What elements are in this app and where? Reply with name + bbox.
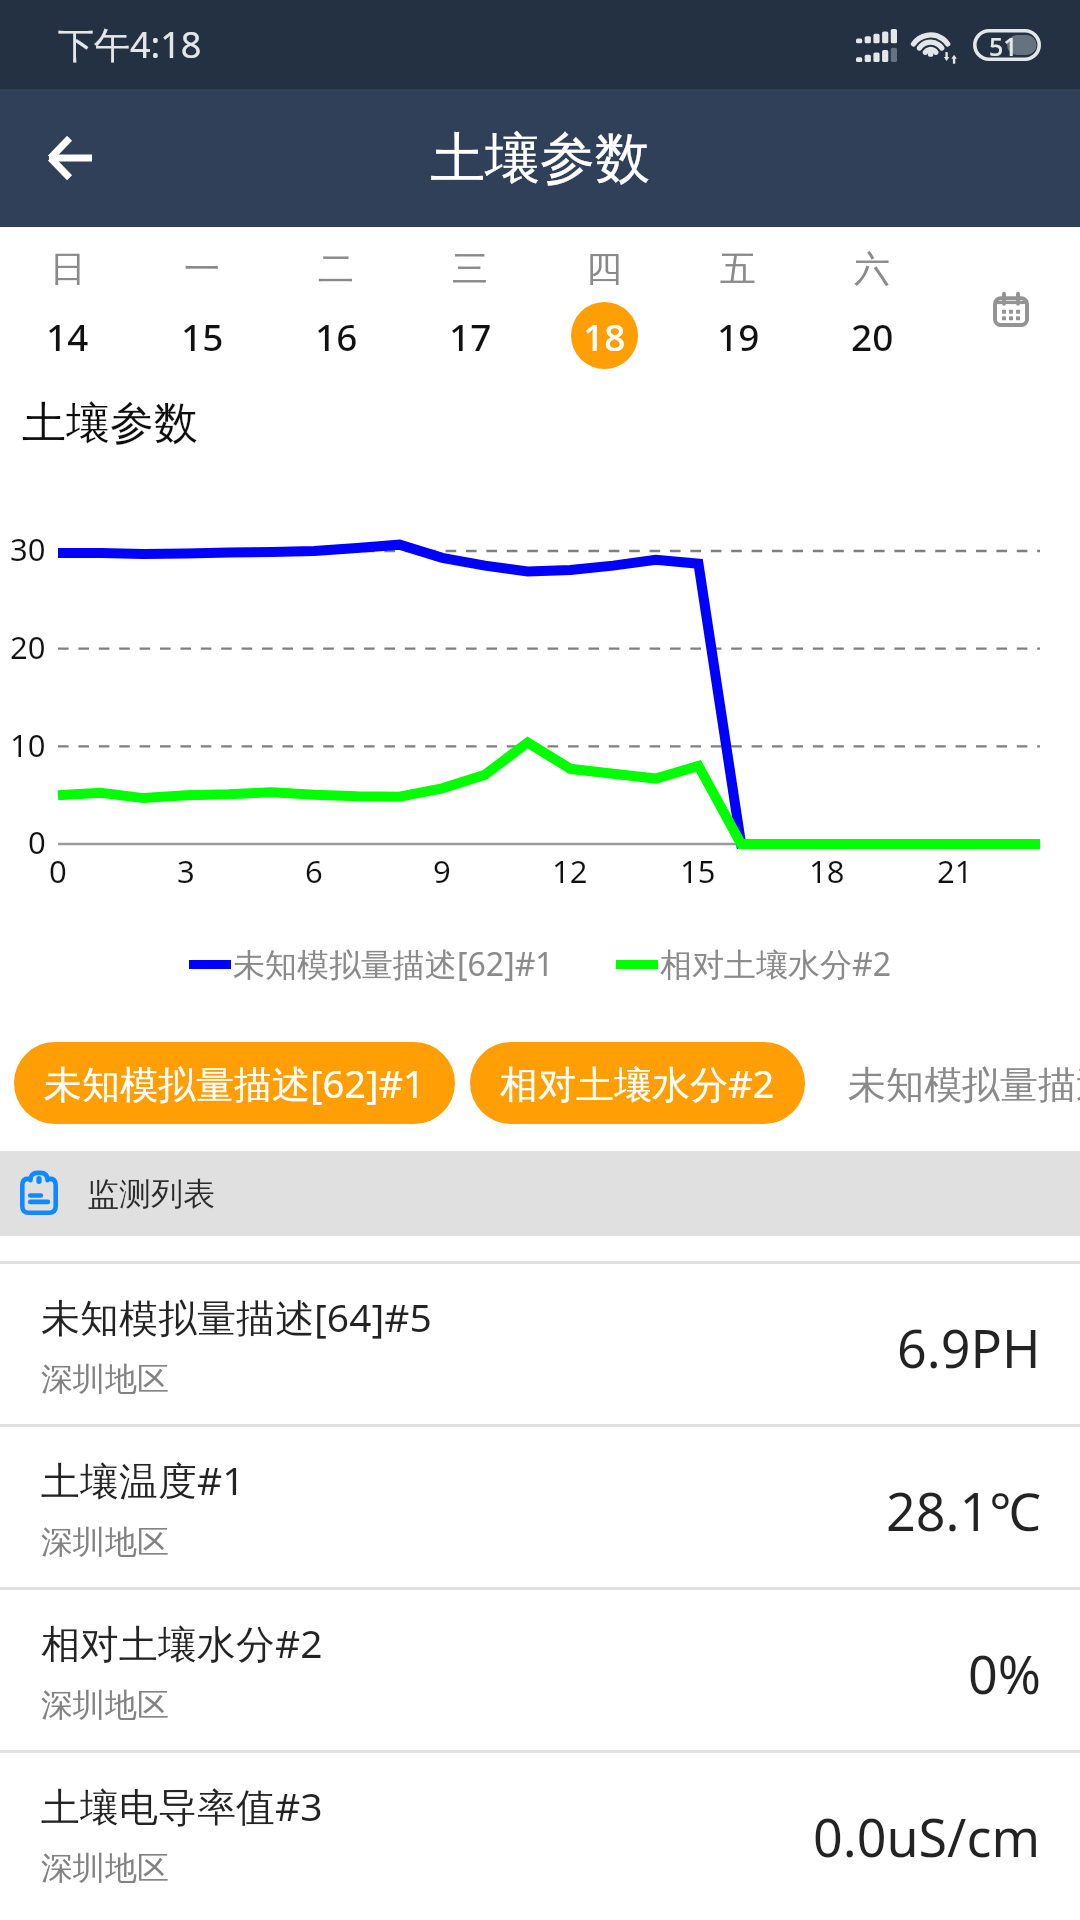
- staticText: 15: [181, 311, 224, 361]
- staticText: 20: [851, 311, 894, 361]
- staticText: 日: [50, 246, 86, 291]
- staticText: 6: [305, 850, 323, 892]
- staticText: 15: [680, 850, 716, 892]
- staticText: 相对土壤水分#2: [41, 1616, 323, 1669]
- staticText: 土壤温度#1: [41, 1453, 245, 1506]
- button[interactable]: 土壤电导率值#3: [0, 1753, 1080, 1913]
- staticText: 0: [49, 850, 67, 892]
- button[interactable]: 相对土壤水分#2: [0, 1590, 1080, 1750]
- button[interactable]: 三: [403, 227, 537, 369]
- staticText: 0: [28, 821, 46, 863]
- button[interactable]: 六: [805, 227, 939, 369]
- staticText: 51: [989, 29, 1018, 61]
- staticText: 28.1℃: [886, 1475, 1041, 1546]
- staticText: 17: [449, 311, 492, 361]
- staticText: 深圳地区: [41, 1848, 169, 1888]
- staticText: 6.9PH: [897, 1312, 1041, 1383]
- staticText: 10: [10, 724, 46, 766]
- staticText: 3: [177, 850, 195, 892]
- button[interactable]: 一: [135, 227, 269, 369]
- staticText: 18: [809, 850, 845, 892]
- button[interactable]: Open calendar: [968, 266, 1054, 352]
- staticText: 20: [10, 626, 46, 668]
- staticText: 16: [315, 311, 358, 361]
- staticText: 六: [854, 246, 890, 291]
- staticText: 14: [46, 311, 89, 361]
- staticText: 未知模拟量描述[64]#5: [41, 1290, 432, 1343]
- button[interactable]: 未知模拟量描述[6: [818, 1042, 1080, 1124]
- staticText: 三: [452, 246, 488, 291]
- button[interactable]: 日: [0, 227, 135, 369]
- staticText: 21: [937, 850, 973, 892]
- staticText: 0.0uS/cm: [813, 1801, 1041, 1872]
- staticText: 下午4:18: [58, 20, 202, 69]
- staticText: 土壤电导率值#3: [41, 1779, 323, 1832]
- staticText: 9: [433, 850, 451, 892]
- staticText: 18: [583, 311, 626, 361]
- staticText: 土壤参数: [22, 396, 198, 451]
- staticText: 12: [552, 850, 588, 892]
- button[interactable]: 四: [537, 227, 671, 369]
- staticText: 未知模拟量描述[62]#1: [233, 942, 554, 986]
- staticText: 五: [720, 246, 756, 291]
- staticText: 二: [318, 246, 354, 291]
- staticText: 相对土壤水分#2: [500, 1057, 775, 1109]
- staticText: 未知模拟量描述[6: [848, 1057, 1080, 1109]
- staticText: 30: [10, 528, 46, 570]
- button[interactable]: 未知模拟量描述[62]#1: [14, 1042, 455, 1124]
- button[interactable]: 土壤温度#1: [0, 1427, 1080, 1587]
- staticText: 深圳地区: [41, 1359, 169, 1399]
- button[interactable]: 二: [269, 227, 403, 369]
- button[interactable]: 未知模拟量描述[64]#5: [0, 1264, 1080, 1424]
- button[interactable]: 五: [671, 227, 805, 369]
- staticText: 监测列表: [87, 1174, 215, 1214]
- staticText: 深圳地区: [41, 1522, 169, 1562]
- staticText: 四: [586, 246, 622, 291]
- staticText: 19: [717, 311, 760, 361]
- button[interactable]: Back: [24, 112, 116, 204]
- staticText: 土壤参数: [430, 124, 650, 193]
- staticText: 0%: [968, 1638, 1041, 1709]
- staticText: 深圳地区: [41, 1685, 169, 1725]
- staticText: 未知模拟量描述[62]#1: [44, 1057, 425, 1109]
- staticText: 一: [184, 246, 220, 291]
- staticText: 相对土壤水分#2: [660, 942, 891, 986]
- button[interactable]: 相对土壤水分#2: [470, 1042, 805, 1124]
